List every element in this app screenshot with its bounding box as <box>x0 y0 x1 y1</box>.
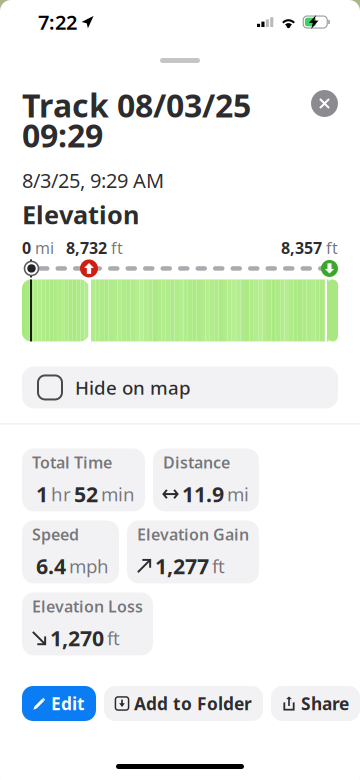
staticText: 52 <box>74 480 98 508</box>
staticText: Elevation Loss <box>32 596 143 617</box>
staticText: Distance <box>163 452 230 473</box>
staticText: Edit <box>51 692 85 715</box>
staticText: ft <box>107 626 120 650</box>
staticText: 8,357 <box>281 237 322 258</box>
staticText: 7:22 <box>38 9 77 35</box>
staticText: ft <box>107 237 123 258</box>
staticText: Total Time <box>32 452 112 473</box>
staticText: 8/3/25, 9:29 AM <box>22 167 164 194</box>
staticText: hr <box>51 482 71 506</box>
staticText: Elevation <box>22 198 139 231</box>
staticText: mi <box>227 482 249 506</box>
staticText: min <box>101 482 135 506</box>
staticText: 1 <box>36 480 48 508</box>
staticText: Add to Folder <box>134 692 252 715</box>
staticText: Hide on map <box>75 375 191 400</box>
staticText: mph <box>69 554 109 578</box>
button[interactable]: Share <box>271 686 360 721</box>
staticText: ft <box>212 554 225 578</box>
staticText: 11.9 <box>182 480 224 508</box>
button[interactable]: Edit <box>22 686 96 721</box>
staticText: 0 <box>22 237 31 258</box>
staticText: 1,277 <box>155 552 209 580</box>
staticText: 6.4 <box>36 552 66 580</box>
staticText: mi <box>31 237 54 258</box>
button[interactable]: Hide on map <box>22 366 338 408</box>
button[interactable]: Add to Folder <box>104 686 263 721</box>
staticText: 8,732 <box>54 237 107 258</box>
staticText: 1,270 <box>50 624 104 652</box>
button[interactable]: Close <box>311 90 338 117</box>
staticText: 09:29 <box>22 114 103 156</box>
staticText: ft <box>322 237 338 258</box>
staticText: Speed <box>32 524 79 545</box>
staticText: Track 08/03/25 <box>22 84 251 126</box>
staticText: Share <box>301 692 349 715</box>
staticText: Elevation Gain <box>137 524 249 545</box>
